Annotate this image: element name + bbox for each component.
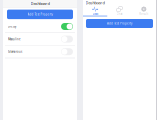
button[interactable]: Data (83, 5, 107, 15)
button[interactable]: Add Test Property (7, 10, 73, 19)
staticText: Data (93, 12, 98, 16)
staticText: Add Test Property (27, 13, 52, 16)
staticText: Dressy (8, 25, 16, 28)
staticText: Add Test Property (107, 22, 132, 25)
button[interactable]: Glamorous (5, 46, 75, 58)
button[interactable]: Chat (107, 5, 132, 15)
staticText: Masculine (8, 37, 21, 41)
button[interactable]: Result (132, 5, 156, 15)
staticText: Chat (116, 12, 122, 16)
staticText: Dashboard (30, 1, 49, 6)
staticText: Result (139, 12, 148, 16)
staticText: Glamorous (8, 50, 22, 53)
button[interactable]: Add Test Property (86, 19, 153, 28)
button[interactable]: Dressy (5, 20, 75, 32)
button[interactable]: Masculine (5, 33, 75, 45)
staticText: Dashboard (85, 0, 104, 5)
